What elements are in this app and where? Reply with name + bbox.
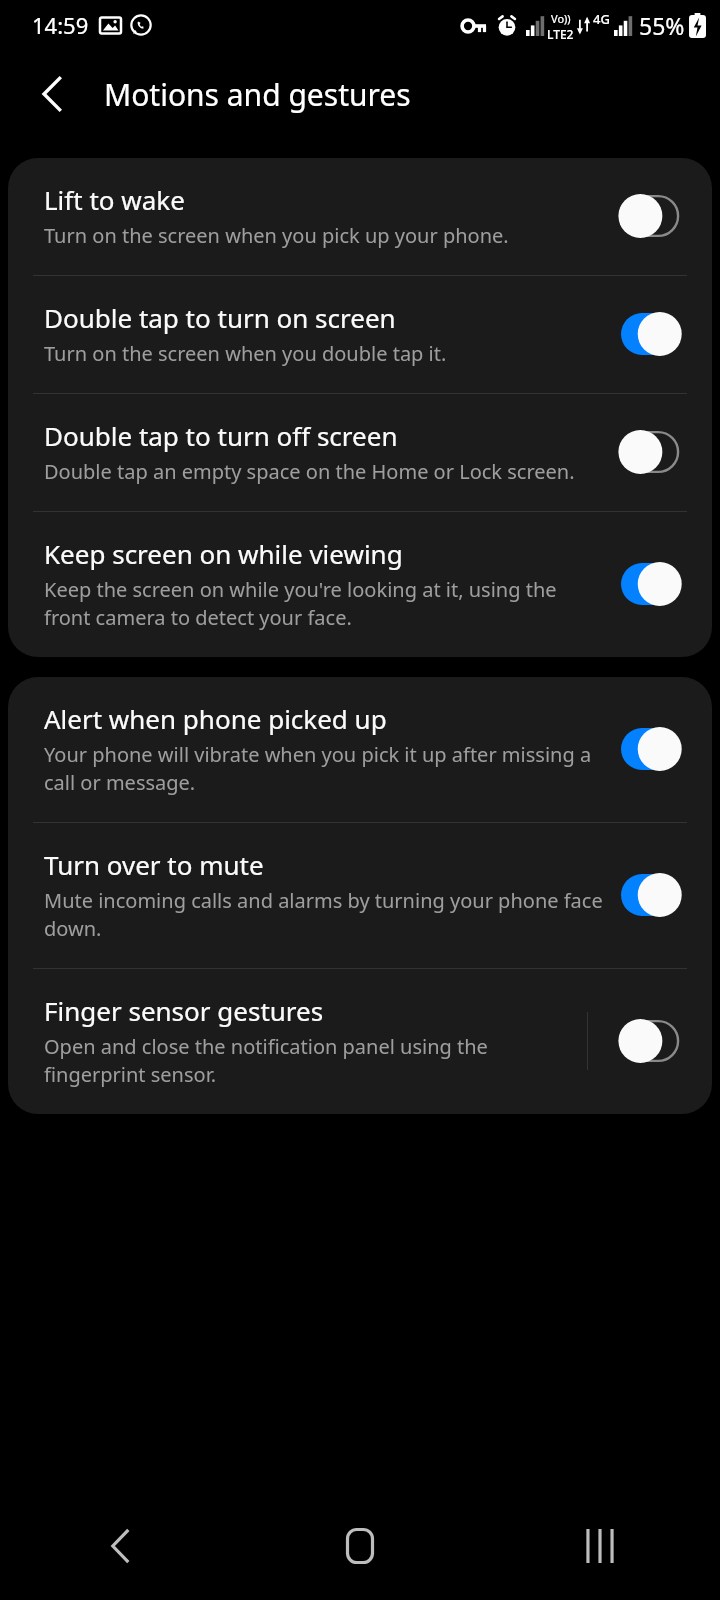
staticText: Keep the screen on while you're looking … bbox=[44, 576, 604, 631]
button[interactable]: Lift to wake, off bbox=[618, 190, 690, 242]
button[interactable]: Double tap to turn off screen bbox=[8, 394, 712, 511]
staticText: Lift to wake bbox=[44, 182, 185, 217]
button[interactable]: Alert when phone picked up, on bbox=[618, 723, 690, 775]
button[interactable]: Turn over to mute, on bbox=[618, 869, 690, 921]
staticText: Turn over to mute bbox=[44, 847, 264, 882]
button[interactable]: Recent apps bbox=[480, 1492, 720, 1600]
staticText: 4G bbox=[593, 10, 610, 28]
button[interactable]: Navigate up bbox=[26, 68, 78, 120]
button[interactable]: Alert when phone picked up bbox=[8, 677, 712, 822]
button[interactable]: Double tap to turn on screen bbox=[8, 276, 712, 393]
button[interactable]: Double tap to turn on screen, on bbox=[618, 308, 690, 360]
staticText: Vo)) bbox=[551, 11, 571, 26]
staticText: Alert when phone picked up bbox=[44, 701, 387, 736]
staticText: Finger sensor gestures bbox=[44, 993, 324, 1028]
staticText: Motions and gestures bbox=[104, 74, 411, 115]
staticText: Turn on the screen when you double tap i… bbox=[44, 340, 447, 367]
staticText: 14:59 bbox=[32, 10, 89, 40]
staticText: Open and close the notification panel us… bbox=[44, 1033, 573, 1088]
button[interactable]: Keep screen on while viewing bbox=[8, 512, 712, 657]
button[interactable]: Finger sensor gestures bbox=[8, 969, 712, 1114]
staticText: LTE2 bbox=[547, 26, 574, 41]
button[interactable]: Lift to wake bbox=[8, 158, 712, 275]
button[interactable]: Home bbox=[240, 1492, 480, 1600]
button[interactable]: Finger sensor gestures, off bbox=[618, 1015, 690, 1067]
button[interactable]: Turn over to mute bbox=[8, 823, 712, 968]
staticText: Double tap an empty space on the Home or… bbox=[44, 458, 575, 485]
staticText: Mute incoming calls and alarms by turnin… bbox=[44, 887, 604, 942]
button[interactable]: Keep screen on while viewing, on bbox=[618, 558, 690, 610]
staticText: 55% bbox=[639, 10, 685, 41]
button[interactable]: Double tap to turn off screen, off bbox=[618, 426, 690, 478]
staticText: Your phone will vibrate when you pick it… bbox=[44, 741, 604, 796]
button[interactable]: Back bbox=[0, 1492, 240, 1600]
staticText: Keep screen on while viewing bbox=[44, 536, 403, 571]
staticText: Double tap to turn on screen bbox=[44, 300, 396, 335]
staticText: Turn on the screen when you pick up your… bbox=[44, 222, 509, 249]
staticText: Double tap to turn off screen bbox=[44, 418, 398, 453]
